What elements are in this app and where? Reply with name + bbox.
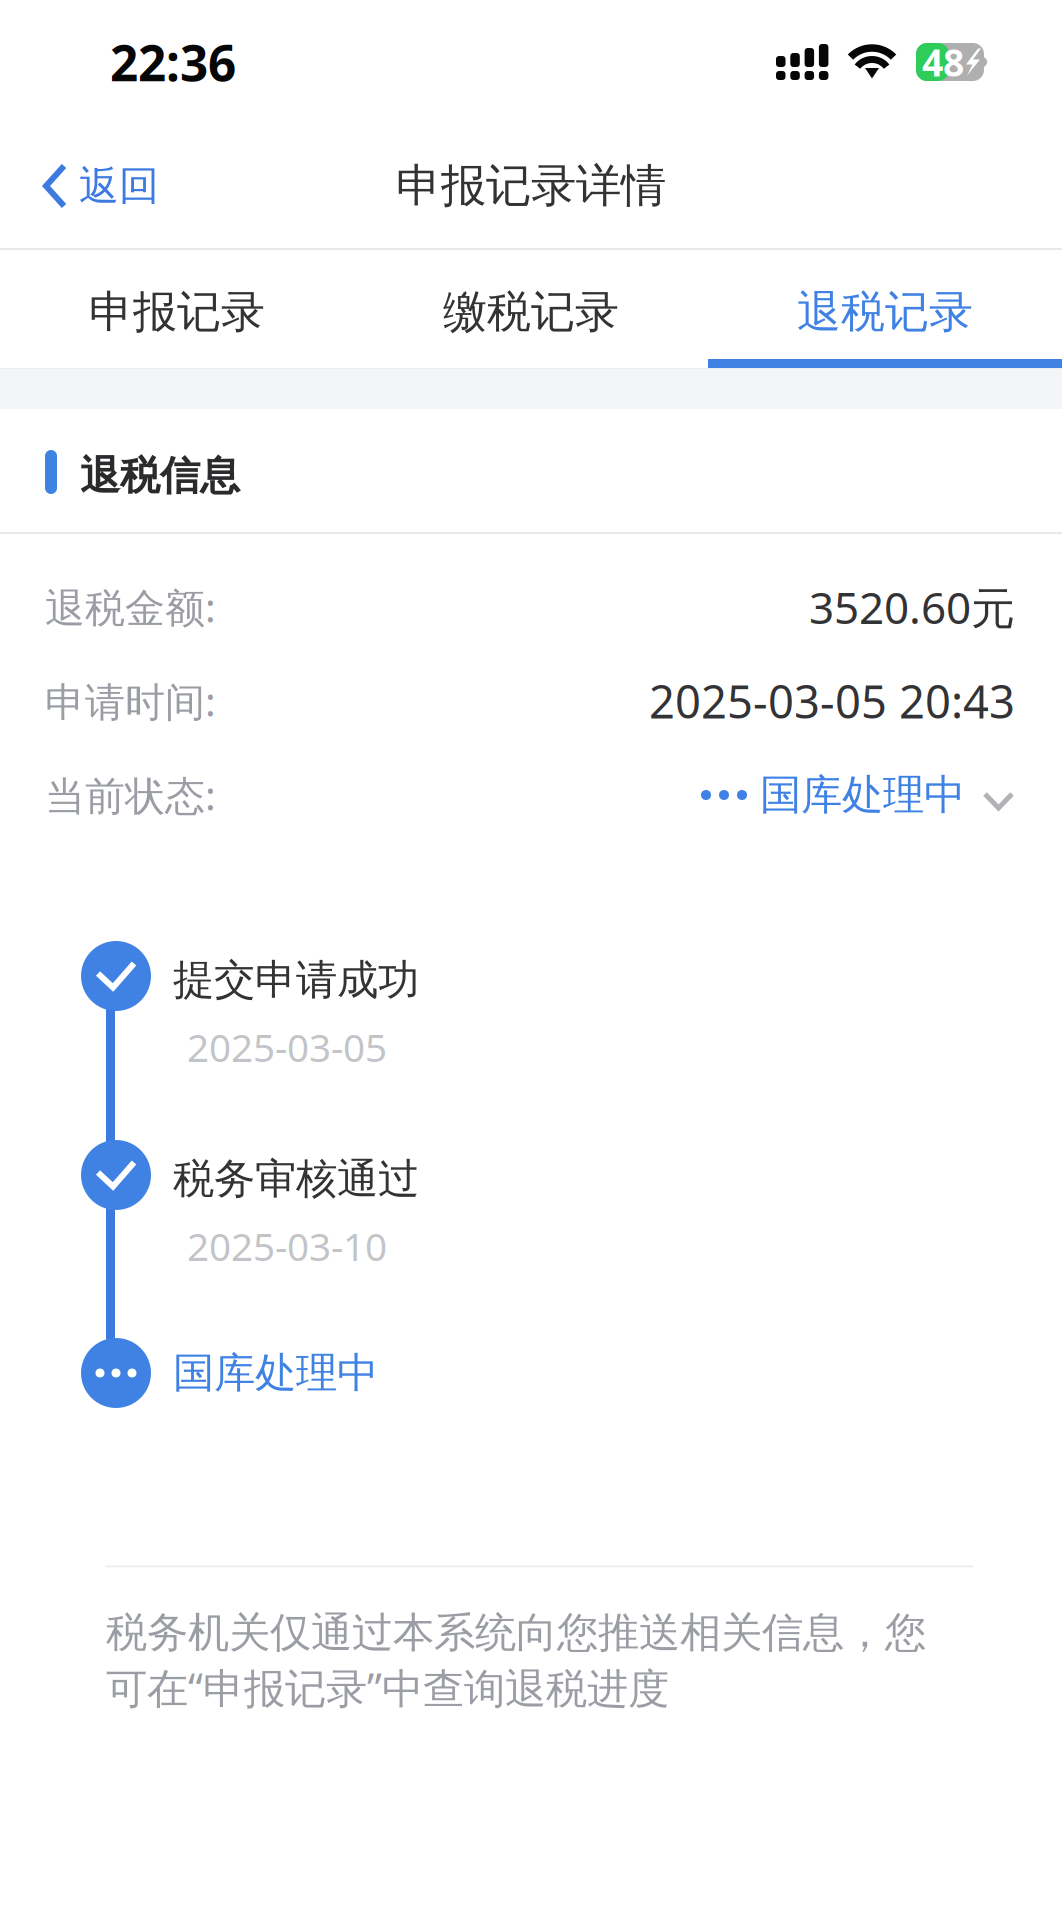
staticText: 提交申请成功 [173,955,419,1005]
staticText: 返回 [79,161,159,210]
staticText: 国库处理中 [173,1348,378,1398]
staticText: 48 [922,37,964,87]
staticText: 当前状态: [45,768,216,821]
staticText: 税务审核通过 [173,1154,419,1204]
staticText: 缴税记录 [443,285,619,339]
button[interactable]: 退税记录 [708,250,1062,368]
staticText: 国库处理中 [760,770,965,820]
staticText: 2025-03-10 [187,1220,387,1272]
button[interactable]: 缴税记录 [354,250,708,368]
staticText: 2025-03-05 20:43 [649,671,1015,731]
staticText: 申请时间: [45,674,216,727]
staticText: 申报记录详情 [396,158,666,214]
button[interactable]: 国库处理中 [701,770,1015,820]
staticText: 税务机关仅通过本系统向您推送相关信息，您 [106,1607,926,1658]
button[interactable]: 返回 [0,124,183,248]
button[interactable]: 申报记录 [0,250,354,368]
staticText: 3520.60元 [809,578,1015,636]
staticText: 退税信息 [80,451,240,500]
staticText: 退税金额: [45,580,216,633]
staticText: 可在“申报记录”中查询退税进度 [106,1660,669,1715]
staticText: 退税记录 [797,285,973,339]
staticText: 22:36 [110,29,236,95]
staticText: 申报记录 [89,285,265,339]
staticText: 2025-03-05 [187,1021,387,1073]
